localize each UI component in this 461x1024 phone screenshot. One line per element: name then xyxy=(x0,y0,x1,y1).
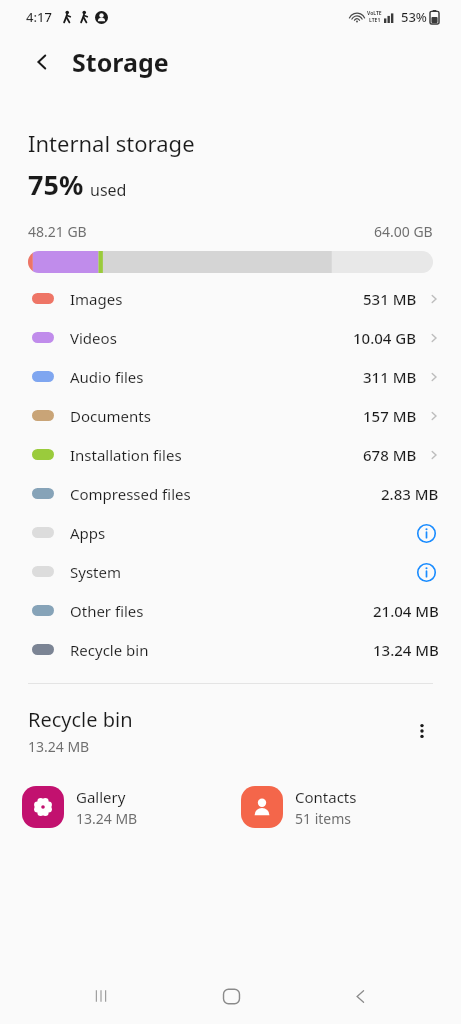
staticText: 13.24 MB xyxy=(373,640,439,660)
button[interactable]: Other files xyxy=(0,591,461,630)
staticText: Videos xyxy=(70,328,117,348)
staticText: 75% xyxy=(28,166,84,203)
staticText: 53% xyxy=(401,8,427,26)
staticText: used xyxy=(90,179,127,201)
button[interactable]: Apps xyxy=(0,513,461,552)
staticText: Installation files xyxy=(70,445,182,465)
staticText: Contacts xyxy=(295,787,357,807)
button[interactable]: More options xyxy=(401,710,443,752)
staticText: Documents xyxy=(70,406,151,426)
button[interactable]: Installation files xyxy=(0,435,461,474)
button[interactable]: Back xyxy=(332,968,388,1024)
staticText: 678 MB xyxy=(363,445,417,465)
staticText: 2.83 MB xyxy=(381,484,439,504)
staticText: 13.24 MB xyxy=(76,809,138,828)
staticText: 157 MB xyxy=(363,406,417,426)
staticText: 531 MB xyxy=(363,289,417,309)
staticText: 13.24 MB xyxy=(28,737,90,756)
staticText: VoLTE xyxy=(367,10,382,17)
staticText: 64.00 GB xyxy=(374,222,433,241)
button[interactable]: Info about System xyxy=(413,559,439,585)
button[interactable]: Documents xyxy=(0,396,461,435)
staticText: Audio files xyxy=(70,367,144,387)
staticText: System xyxy=(70,562,121,582)
button[interactable]: Home xyxy=(203,968,259,1024)
staticText: Images xyxy=(70,289,123,309)
button[interactable]: Images xyxy=(0,279,461,318)
staticText: 4:17 xyxy=(26,8,52,26)
button[interactable]: Contacts xyxy=(241,782,461,832)
button[interactable]: System xyxy=(0,552,461,591)
button[interactable]: Videos xyxy=(0,318,461,357)
staticText: Storage xyxy=(72,45,169,79)
button[interactable]: Back xyxy=(22,42,62,82)
staticText: Internal storage xyxy=(28,128,195,158)
staticText: Other files xyxy=(70,601,144,621)
staticText: 21.04 MB xyxy=(373,601,439,621)
button[interactable]: Info about Apps xyxy=(413,520,439,546)
staticText: Apps xyxy=(70,523,106,543)
staticText: 10.04 GB xyxy=(353,328,417,348)
staticText: 48.21 GB xyxy=(28,222,87,241)
staticText: Compressed files xyxy=(70,484,191,504)
staticText: LTE1 xyxy=(369,17,381,24)
button[interactable]: Recycle bin xyxy=(0,630,461,669)
staticText: 311 MB xyxy=(363,367,417,387)
button[interactable]: Gallery xyxy=(22,782,241,832)
staticText: Gallery xyxy=(76,787,126,807)
staticText: Recycle bin xyxy=(70,640,149,660)
button[interactable]: Audio files xyxy=(0,357,461,396)
button[interactable]: Compressed files xyxy=(0,474,461,513)
staticText: 51 items xyxy=(295,809,352,828)
button[interactable]: Recents xyxy=(73,968,129,1024)
staticText: Recycle bin xyxy=(28,706,133,733)
